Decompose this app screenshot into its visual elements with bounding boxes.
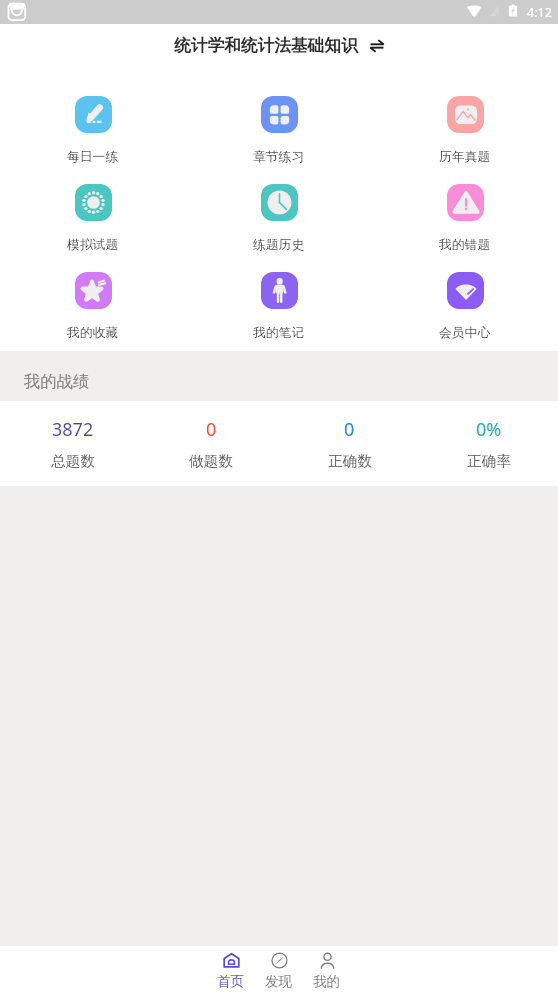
button[interactable]: 历年真题 bbox=[372, 96, 558, 165]
staticText: 统计学和统计法基础知识 bbox=[174, 35, 358, 56]
staticText: 4:12 bbox=[527, 4, 552, 21]
staticText: 我的战绩 bbox=[24, 371, 90, 392]
button[interactable]: 练题历史 bbox=[186, 184, 372, 253]
button[interactable]: Switch subject bbox=[370, 39, 384, 53]
button[interactable]: 我的错题 bbox=[372, 184, 558, 253]
staticText: 正确数 bbox=[328, 452, 372, 470]
button[interactable]: 首页 bbox=[207, 946, 255, 992]
staticText: 3872 bbox=[52, 417, 94, 442]
button[interactable]: 0 bbox=[142, 417, 280, 470]
button[interactable]: 每日一练 bbox=[0, 96, 186, 165]
staticText: 会员中心 bbox=[439, 325, 491, 341]
staticText: 正确率 bbox=[467, 452, 511, 470]
staticText: 我的 bbox=[313, 973, 341, 990]
staticText: 章节练习 bbox=[253, 149, 305, 165]
staticText: 练题历史 bbox=[253, 237, 305, 253]
staticText: 我的笔记 bbox=[253, 325, 305, 341]
staticText: 发现 bbox=[265, 973, 293, 990]
button[interactable]: 我的收藏 bbox=[0, 272, 186, 341]
button[interactable]: 会员中心 bbox=[372, 272, 558, 341]
staticText: 我的收藏 bbox=[67, 325, 119, 341]
button[interactable]: 0 bbox=[280, 417, 419, 470]
button[interactable]: 章节练习 bbox=[186, 96, 372, 165]
button[interactable]: 发现 bbox=[255, 946, 303, 992]
button[interactable]: 我的笔记 bbox=[186, 272, 372, 341]
staticText: 0 bbox=[206, 417, 217, 442]
button[interactable]: 3872 bbox=[4, 417, 142, 470]
staticText: 历年真题 bbox=[439, 149, 491, 165]
staticText: 每日一练 bbox=[67, 149, 119, 165]
staticText: 我的错题 bbox=[439, 237, 491, 253]
staticText: 0 bbox=[344, 417, 355, 442]
staticText: 做题数 bbox=[189, 452, 233, 470]
button[interactable]: 我的 bbox=[303, 946, 351, 992]
staticText: 首页 bbox=[217, 973, 245, 990]
staticText: 总题数 bbox=[51, 452, 95, 470]
staticText: 0% bbox=[476, 417, 502, 442]
button[interactable]: 0% bbox=[419, 417, 558, 470]
button[interactable]: 模拟试题 bbox=[0, 184, 186, 253]
staticText: 模拟试题 bbox=[67, 237, 119, 253]
